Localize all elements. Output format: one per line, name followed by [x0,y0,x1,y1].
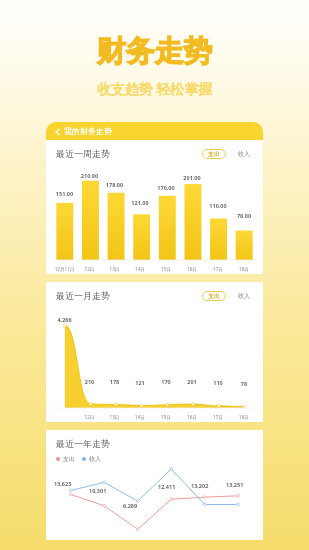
staticText: 13日 [102,266,127,272]
staticText: 13,202 [191,482,209,489]
button[interactable]: 收入 [234,149,254,159]
staticText: 14日 [127,266,153,272]
staticText: 14日 [127,414,153,420]
staticText: 最近一月走势 [56,290,110,301]
staticText: 178 [102,378,127,385]
button[interactable]: 支出 [202,291,226,301]
staticText: 15日 [153,414,179,420]
button[interactable]: Back [51,125,64,138]
staticText: 16日 [179,266,205,272]
staticText: 16日 [179,414,205,420]
staticText: 13日 [102,414,127,420]
staticText: 13,251 [226,481,244,488]
staticText: 13,623 [54,480,72,487]
staticText: 12日 [77,414,102,420]
staticText: 10,301 [89,487,107,494]
staticText: 6,289 [123,502,138,509]
staticText: 18日 [231,414,257,420]
staticText: 12月11日 [52,266,77,272]
staticText: 支出 [63,455,75,463]
staticText: 17日 [205,414,231,420]
staticText: 78.00 [231,212,257,219]
staticText: 财务走势 [0,33,309,70]
staticText: 收入 [238,150,250,158]
staticText: 201 [179,378,205,385]
staticText: 151.00 [52,190,77,197]
staticText: 我的财务走势 [64,126,112,136]
staticText: 最近一年走势 [56,438,110,449]
staticText: 78 [231,380,257,387]
button[interactable]: 支出 [202,149,226,159]
staticText: 210 [77,378,102,385]
staticText: 收入 [238,292,250,300]
staticText: 201.00 [179,174,205,181]
staticText: 110.00 [205,202,231,209]
staticText: 收支趋势 轻松掌握 [0,79,309,98]
staticText: 12日 [77,266,102,272]
staticText: 121.00 [127,199,153,206]
button[interactable]: 收入 [234,291,254,301]
staticText: 收入 [89,455,101,463]
staticText: 15日 [153,266,179,272]
staticText: 最近一周走势 [56,148,110,159]
staticText: 178.00 [102,181,127,188]
staticText: 12,411 [158,483,176,490]
staticText: 4,266 [52,316,77,323]
staticText: 17日 [205,266,231,272]
staticText: 110 [205,379,231,386]
staticText: 支出 [208,292,220,300]
staticText: 210.00 [77,172,102,179]
staticText: 支出 [208,150,220,158]
staticText: 18日 [231,266,257,272]
staticText: 121 [127,379,153,386]
staticText: 170 [153,378,179,385]
staticText: 170.00 [153,184,179,191]
